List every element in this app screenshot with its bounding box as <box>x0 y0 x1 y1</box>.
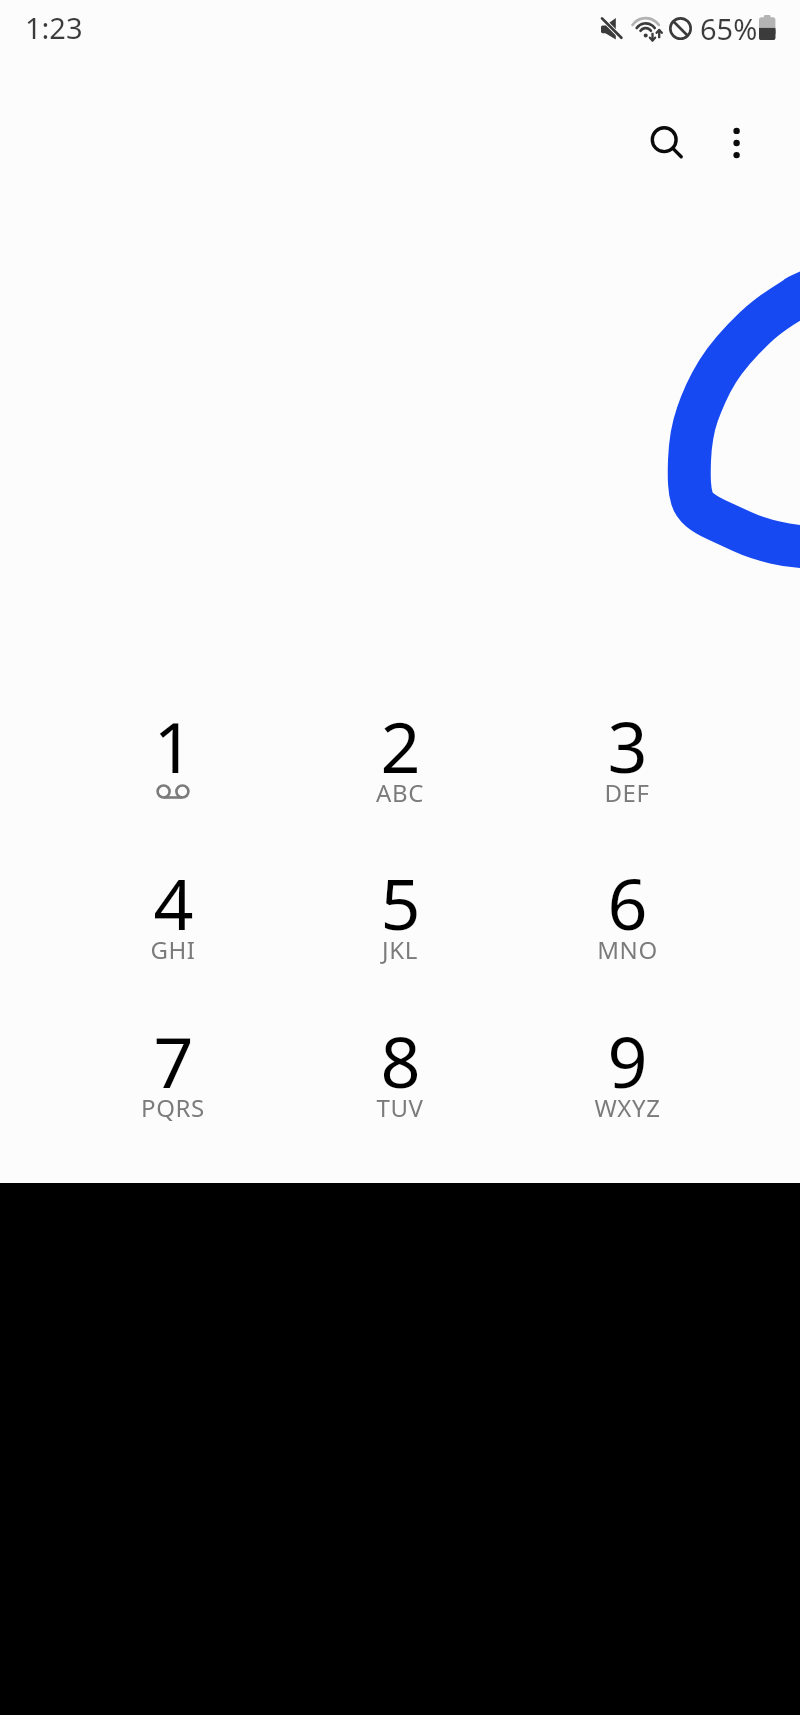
staticText: DEF <box>604 776 650 809</box>
staticText: 2 <box>380 698 421 793</box>
staticText: 1 <box>153 698 194 793</box>
button[interactable]: 8 TUV <box>290 1004 510 1156</box>
staticText: 5 <box>380 855 421 950</box>
button[interactable]: 7 PQRS <box>63 1004 283 1156</box>
staticText: 4 <box>153 855 194 950</box>
button[interactable]: Search <box>640 115 690 165</box>
staticText: 1:23 <box>25 8 83 47</box>
staticText: 9 <box>607 1013 648 1108</box>
staticText: 8 <box>380 1013 421 1108</box>
staticText: ABC <box>376 776 424 809</box>
staticText: TUV <box>376 1091 424 1124</box>
staticText: JKL <box>382 933 418 966</box>
button[interactable]: 6 MNO <box>517 846 737 998</box>
staticText: PQRS <box>141 1091 205 1124</box>
staticText: 65% <box>700 9 758 48</box>
staticText: MNO <box>597 933 658 966</box>
button[interactable]: 5 JKL <box>290 846 510 998</box>
button[interactable]: 1 voicemail <box>63 689 283 841</box>
staticText: 6 <box>607 855 648 950</box>
staticText: 3 <box>607 698 648 793</box>
staticText: 7 <box>153 1013 194 1108</box>
button[interactable]: 9 WXYZ <box>517 1004 737 1156</box>
staticText: WXYZ <box>594 1091 661 1124</box>
button[interactable]: 2 ABC <box>290 689 510 841</box>
button[interactable]: 3 DEF <box>517 689 737 841</box>
button[interactable]: 4 GHI <box>63 846 283 998</box>
staticText: GHI <box>150 933 196 966</box>
button[interactable]: More options <box>712 115 762 165</box>
